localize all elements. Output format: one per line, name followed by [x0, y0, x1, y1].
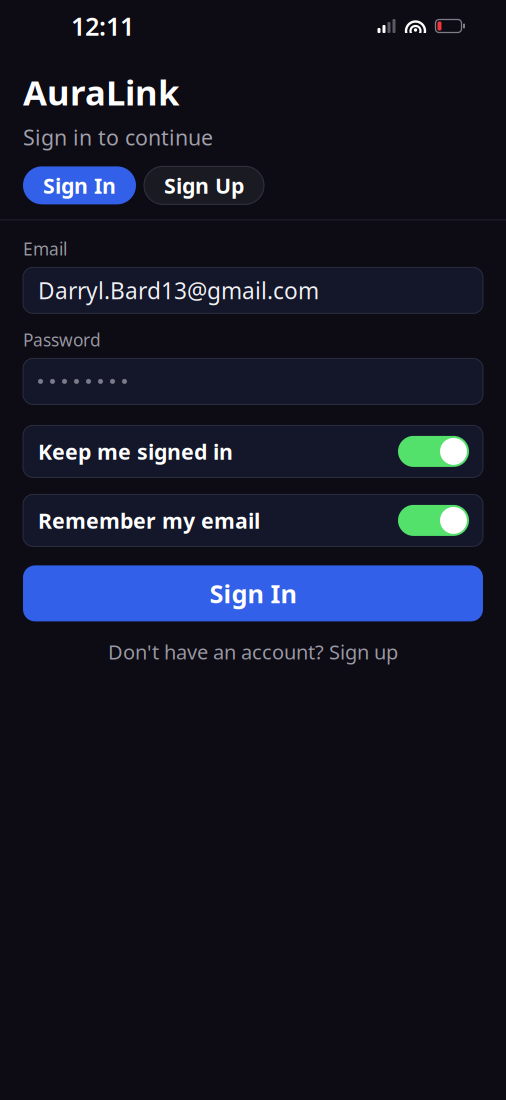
- staticText: Sign In: [209, 577, 296, 610]
- staticText: Sign in to continue: [23, 123, 213, 151]
- staticText: Remember my email: [38, 506, 260, 534]
- staticText: Keep me signed in: [38, 437, 233, 465]
- staticText: Email: [23, 237, 67, 260]
- button[interactable]: Don't have an account? Sign up: [23, 632, 483, 671]
- button[interactable]: Sign In: [23, 565, 483, 621]
- staticText: Don't have an account? Sign up: [108, 638, 398, 665]
- staticText: 12:11: [71, 9, 134, 43]
- staticText: Darryl.Bard13@gmail.com: [38, 275, 319, 305]
- staticText: Password: [23, 328, 101, 351]
- button[interactable]: Keep me signed in: [23, 425, 483, 477]
- staticText: AuraLink: [23, 69, 179, 115]
- button[interactable]: Remember my email: [23, 494, 483, 546]
- staticText: Sign Up: [164, 171, 244, 199]
- button[interactable]: Sign Up: [144, 166, 264, 204]
- button[interactable]: Sign In: [23, 166, 136, 204]
- staticText: Sign In: [43, 171, 116, 199]
